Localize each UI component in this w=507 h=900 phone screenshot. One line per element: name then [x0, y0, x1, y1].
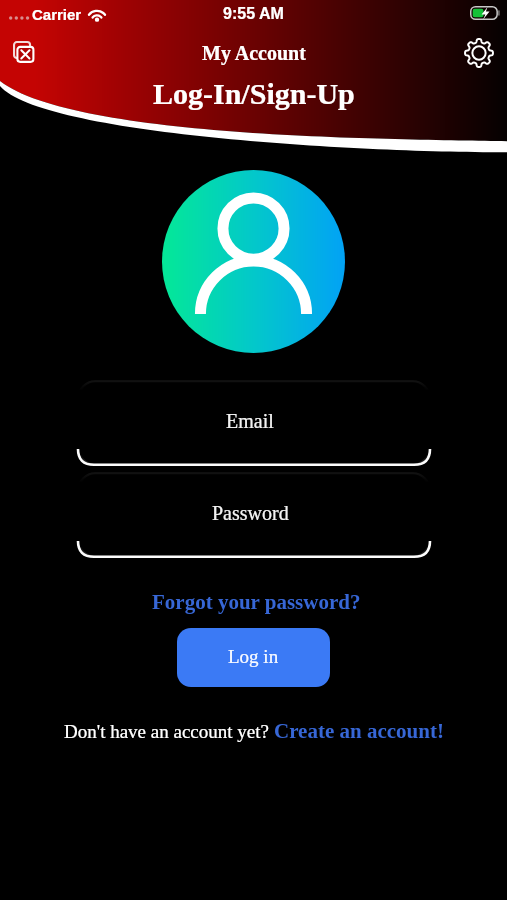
staticText: Log in [228, 646, 279, 667]
staticText: Carrier [32, 6, 82, 23]
button[interactable]: Close [4, 33, 42, 71]
button[interactable]: Forgot your password? [148, 590, 365, 613]
button[interactable]: Log in [177, 628, 330, 687]
staticText: My Account [202, 42, 306, 64]
button[interactable]: Password [77, 472, 431, 558]
staticText: Email [226, 410, 274, 432]
button[interactable]: Email [77, 380, 431, 466]
button[interactable]: Settings [459, 33, 499, 73]
staticText: Don't have an account yet? [64, 721, 274, 742]
staticText: Log-In/Sign-Up [153, 77, 355, 110]
staticText: Password [212, 502, 289, 524]
button[interactable]: Create an account! [274, 719, 444, 742]
staticText: 9:55 AM [223, 5, 284, 23]
